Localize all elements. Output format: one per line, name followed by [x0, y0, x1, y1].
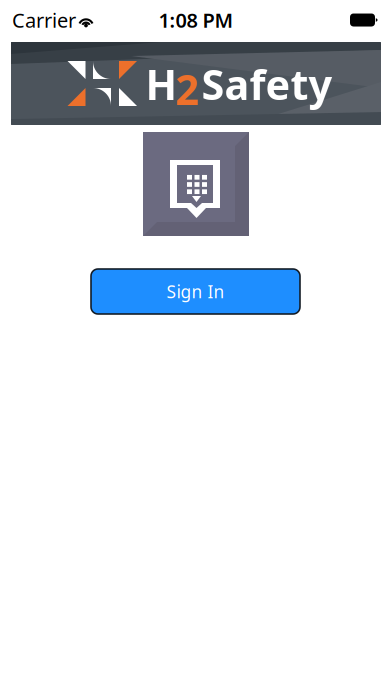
staticText: H: [145, 57, 177, 111]
button[interactable]: Sign In: [91, 269, 300, 314]
staticText: Safety: [201, 57, 332, 111]
staticText: 1:08 PM: [158, 7, 233, 33]
staticText: 2: [175, 62, 199, 116]
staticText: Carrier: [12, 7, 76, 33]
staticText: Sign In: [166, 280, 224, 303]
